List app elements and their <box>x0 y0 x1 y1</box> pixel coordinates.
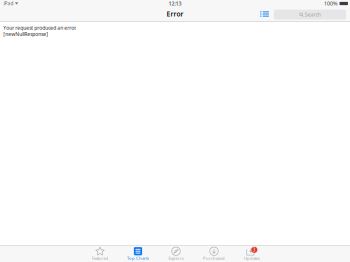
button[interactable]: Featured <box>81 245 119 262</box>
staticText: Search <box>305 11 321 18</box>
staticText: iPad <box>3 0 13 7</box>
staticText: Top Charts <box>127 255 149 261</box>
staticText: Explore <box>168 255 183 261</box>
staticText: Featured <box>91 255 108 261</box>
staticText: 12:13 <box>168 0 181 7</box>
staticText: 100% <box>324 0 338 7</box>
button[interactable]: Search <box>274 8 346 20</box>
staticText: Your request produced an error. <box>3 24 76 31</box>
button[interactable]: Explore <box>157 245 195 262</box>
button[interactable]: Top Charts <box>119 245 157 262</box>
staticText: Error <box>166 10 183 18</box>
staticText: Purchased <box>203 255 225 261</box>
button[interactable]: List view <box>256 7 269 21</box>
staticText: 3 <box>253 247 256 253</box>
button[interactable]: 3 <box>233 245 271 262</box>
staticText: [newNullResponse] <box>3 31 48 37</box>
staticText: Updates <box>244 255 260 261</box>
button[interactable]: Purchased <box>195 245 233 262</box>
